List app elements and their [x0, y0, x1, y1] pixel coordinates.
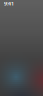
staticText: 9:41: [4, 0, 14, 7]
